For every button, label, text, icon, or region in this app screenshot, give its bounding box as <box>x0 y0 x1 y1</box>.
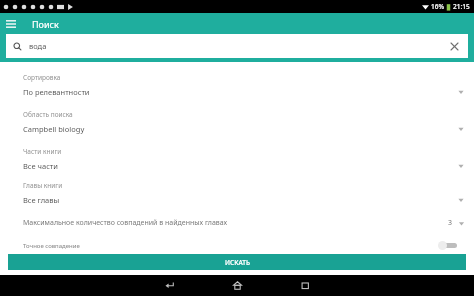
staticText: Главы книги <box>23 181 63 190</box>
staticText: Части книги <box>23 147 62 156</box>
staticText: 3 <box>448 218 453 228</box>
button[interactable]: Максимальное количество совпадений в най… <box>0 218 474 228</box>
staticText: По релевантности <box>23 87 90 97</box>
button[interactable]: Меню <box>0 13 22 35</box>
staticText: Все части <box>23 161 59 171</box>
staticText: Максимальное количество совпадений в най… <box>23 218 448 228</box>
staticText: ИСКАТЬ <box>225 258 250 267</box>
button[interactable]: Части книги <box>0 143 474 173</box>
staticText: 16% <box>431 2 444 11</box>
staticText: Все главы <box>23 195 60 205</box>
button[interactable]: вода <box>6 34 468 58</box>
button[interactable]: Область поиска <box>0 106 474 136</box>
staticText: Поиск <box>32 18 59 30</box>
button[interactable]: Главный экран <box>222 275 252 296</box>
staticText: Точное совпадение <box>23 242 438 250</box>
button[interactable]: ИСКАТЬ <box>8 254 466 270</box>
staticText: Campbell biology <box>23 124 85 134</box>
staticText: Сортировка <box>23 73 61 82</box>
button[interactable]: Сортировка <box>0 69 474 99</box>
staticText: вода <box>29 41 47 51</box>
button[interactable]: Главы книги <box>0 177 474 207</box>
button[interactable]: Недавние приложения <box>290 275 320 296</box>
button[interactable]: Точное совпадение <box>0 241 474 250</box>
staticText: Область поиска <box>23 110 73 119</box>
button[interactable]: Назад <box>154 275 184 296</box>
button[interactable]: Очистить <box>444 36 464 56</box>
staticText: 21:15 <box>453 2 470 11</box>
